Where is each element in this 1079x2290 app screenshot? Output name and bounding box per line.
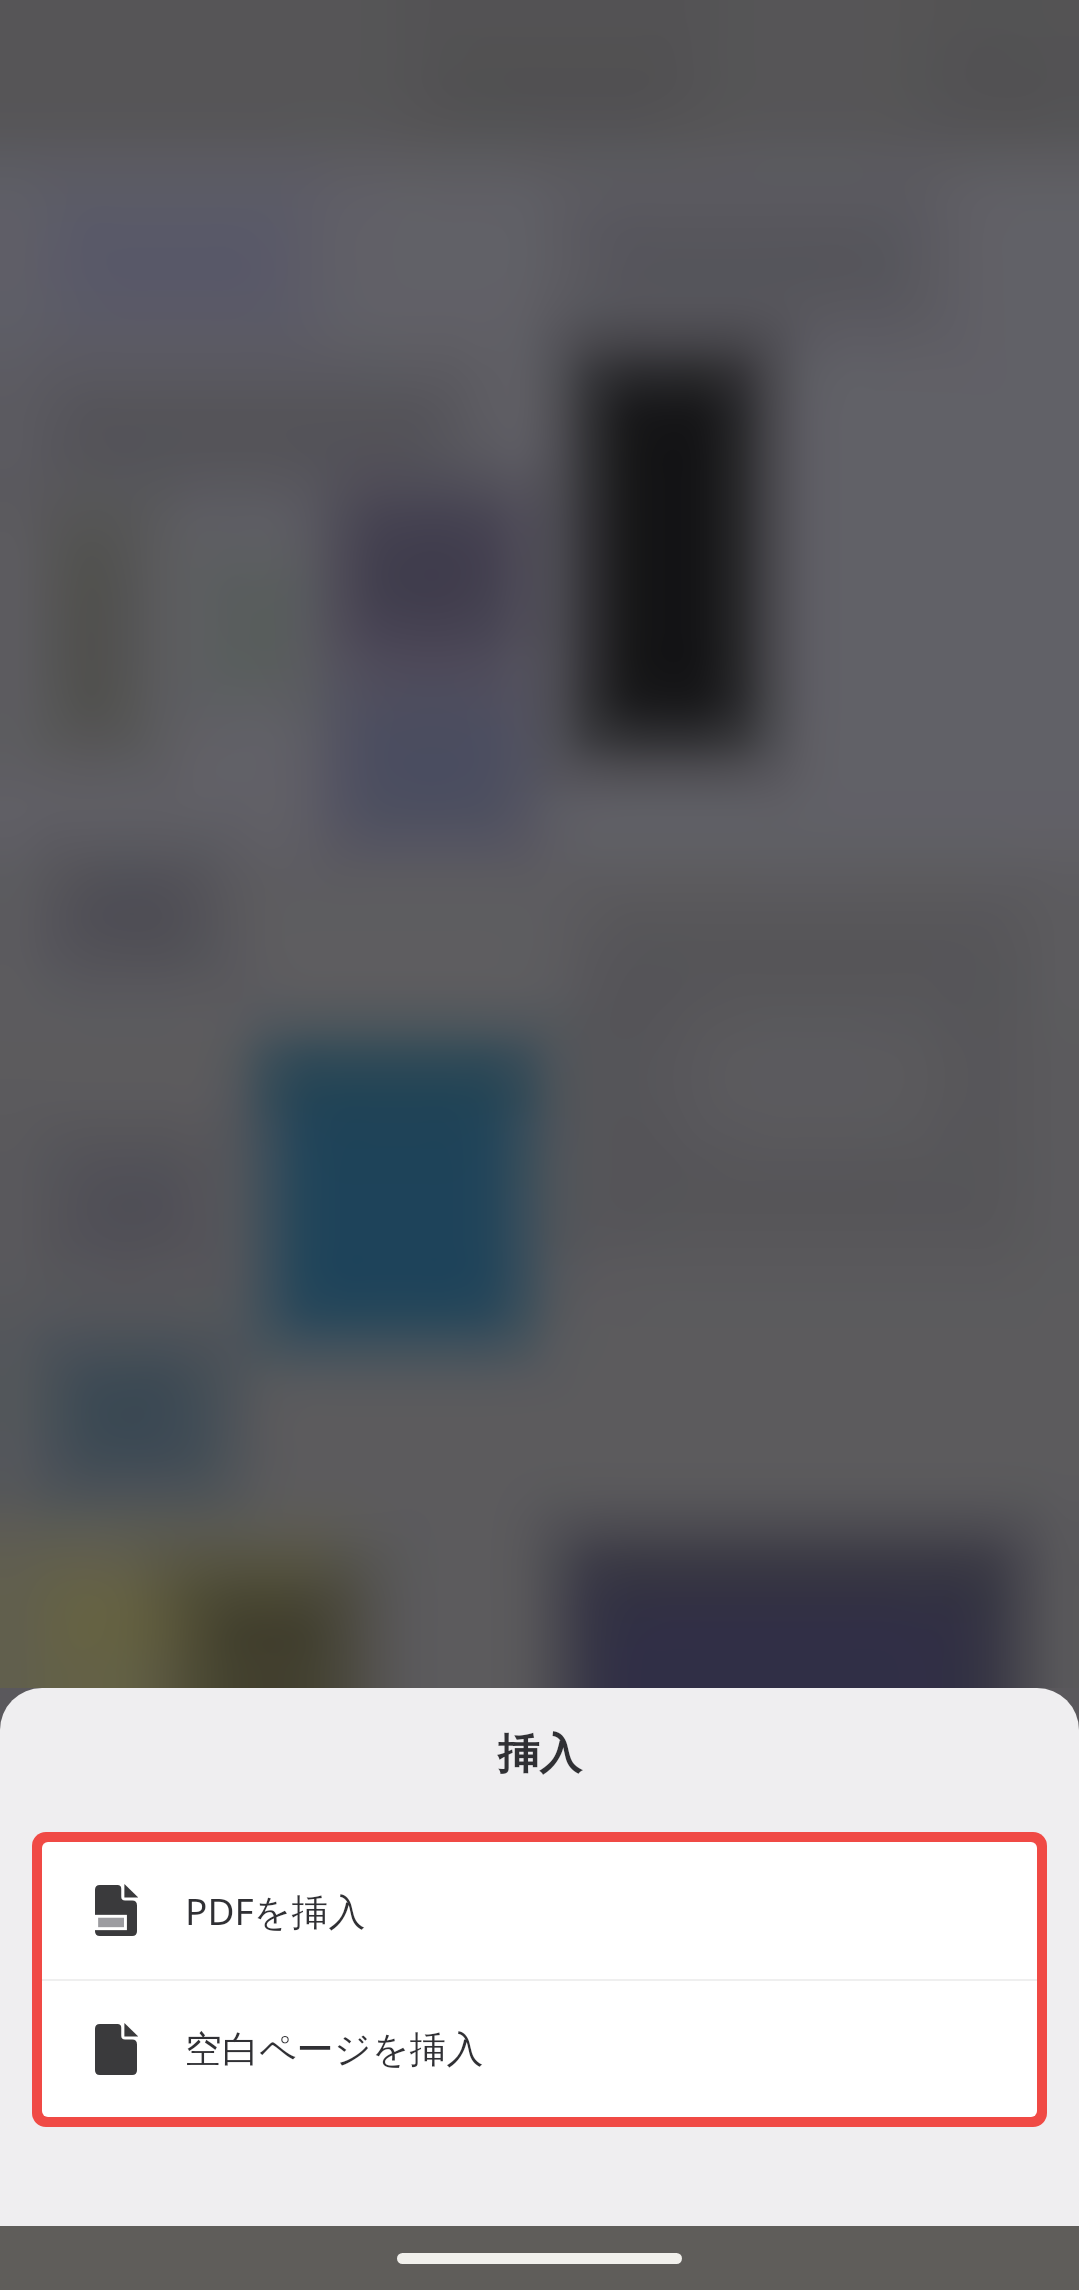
staticText: PDFを挿入 [185, 1885, 366, 1936]
button[interactable]: PDFを挿入 [42, 1842, 1037, 1979]
button[interactable]: 空白ページを挿入 [42, 1981, 1037, 2117]
button[interactable]: 閉じる [0, 0, 1079, 1688]
staticText: 空白ページを挿入 [185, 2026, 484, 2073]
staticText: 挿入 [0, 1728, 1079, 1781]
